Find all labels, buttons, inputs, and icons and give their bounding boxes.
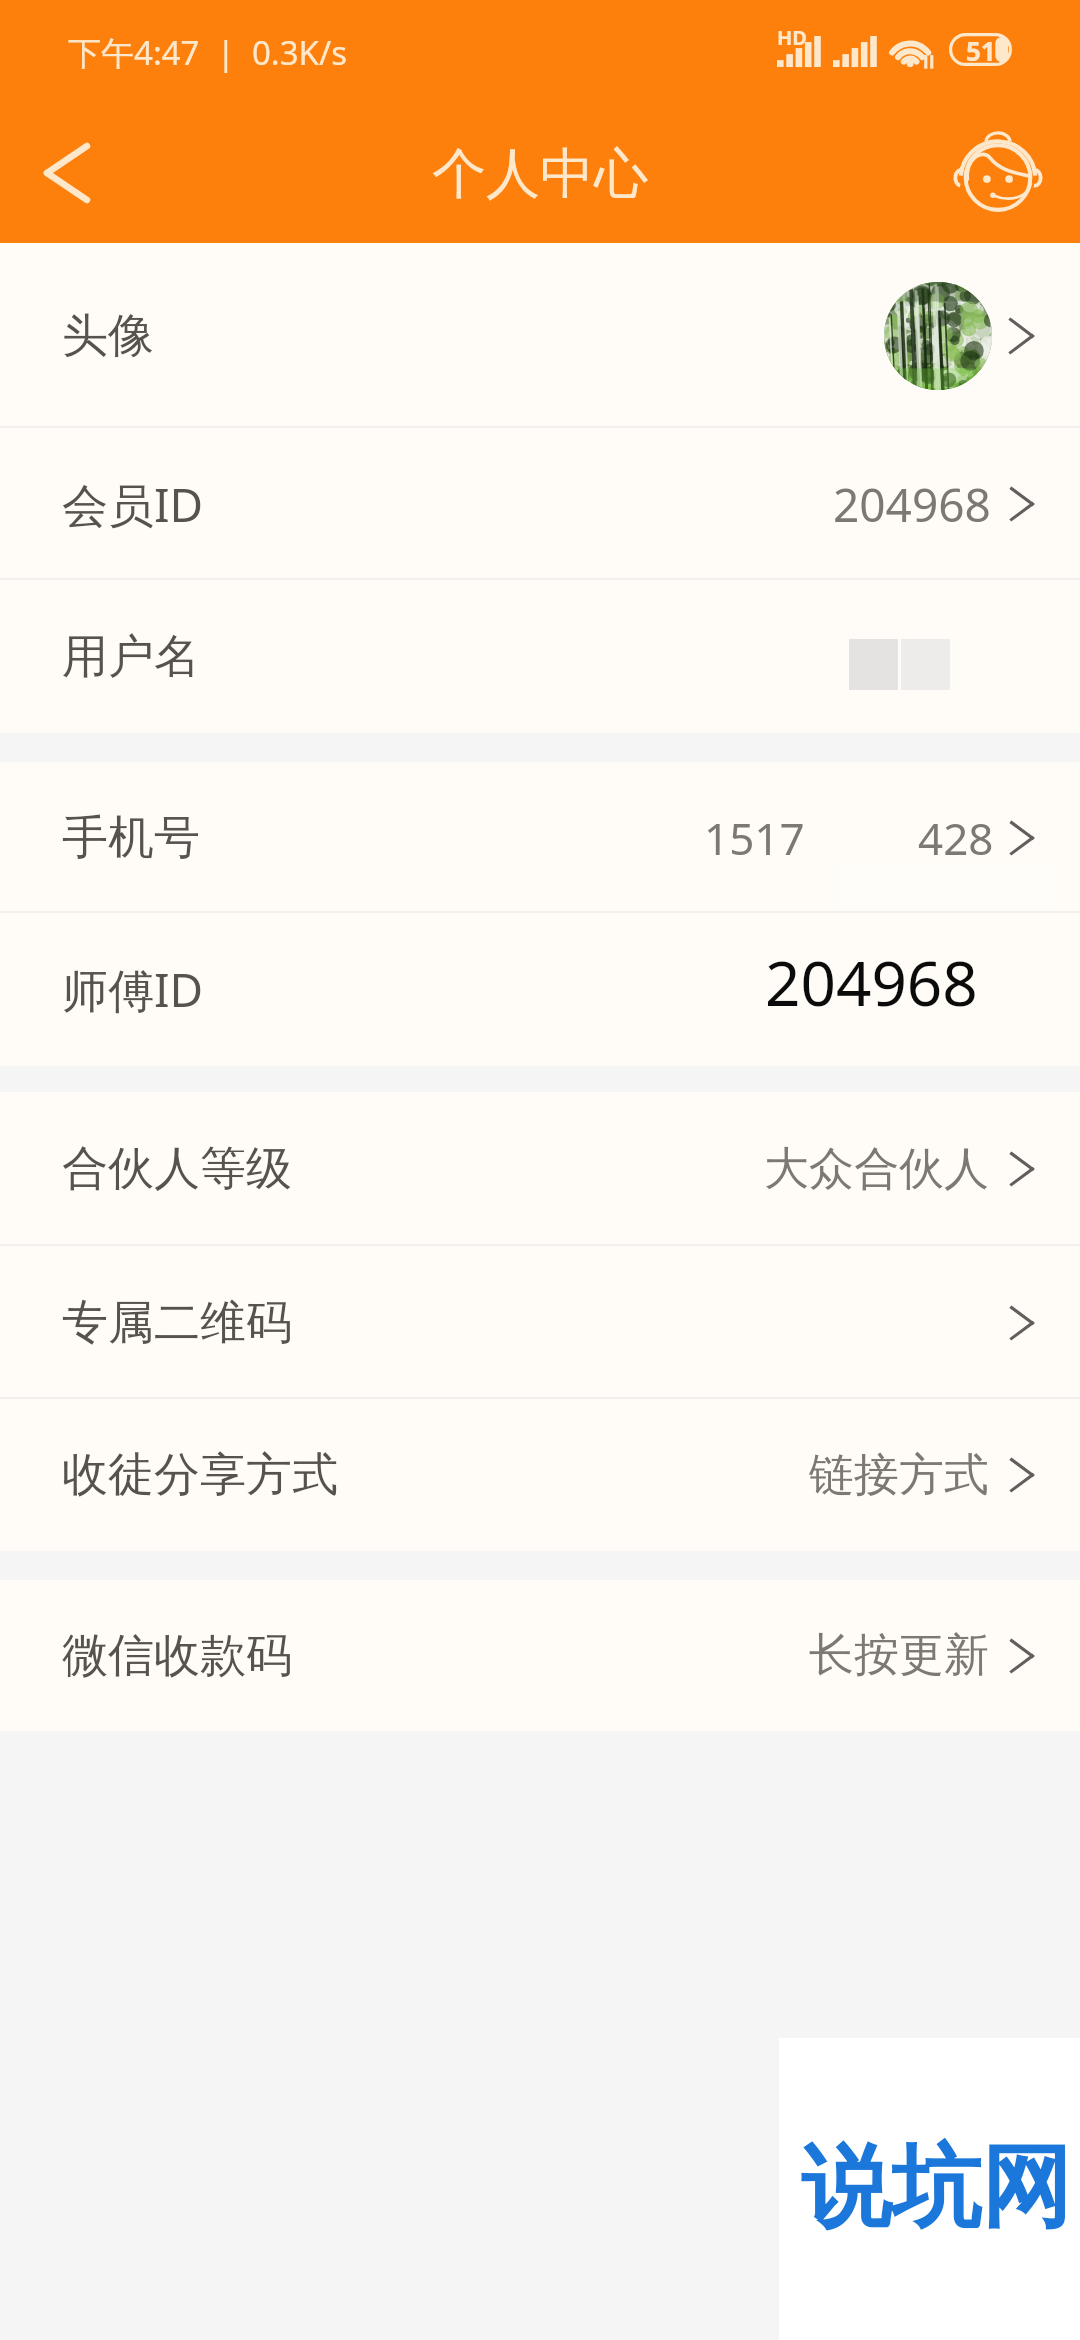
button[interactable]: 师傅ID [0, 913, 1080, 1066]
button[interactable]: 手机号 [0, 762, 1080, 913]
staticText: 下午4:47 | 0.3K/s [68, 30, 348, 75]
staticText: 链接方式 [809, 1447, 989, 1504]
staticText: 头像 [62, 307, 154, 365]
staticText: 合伙人等级 [62, 1140, 292, 1198]
button[interactable]: 合伙人等级 [0, 1092, 1080, 1246]
button[interactable]: Back [17, 127, 117, 219]
staticText: 用户名 [62, 628, 200, 686]
staticText: 说坑网 [801, 2131, 1071, 2244]
staticText: 个人中心 [432, 140, 648, 208]
staticText: 手机号 [62, 809, 200, 867]
staticText: 师傅ID [62, 958, 204, 1021]
staticText: 51 [966, 33, 996, 66]
staticText: 微信收款码 [62, 1627, 292, 1685]
button[interactable]: 用户名 [0, 580, 1080, 733]
staticText: 428 [918, 808, 994, 868]
button[interactable]: 头像 [0, 243, 1080, 428]
staticText: 大众合伙人 [764, 1141, 989, 1198]
button[interactable]: Customer service [936, 110, 1058, 232]
button[interactable]: 收徒分享方式 [0, 1399, 1080, 1551]
staticText: 会员ID [62, 473, 204, 536]
button[interactable]: 专属二维码 [0, 1246, 1080, 1399]
button[interactable]: 微信收款码 [0, 1580, 1080, 1731]
staticText: 204968 [833, 473, 991, 536]
staticText: 收徒分享方式 [62, 1446, 338, 1504]
staticText: 1517 [704, 808, 805, 868]
staticText: HD [777, 24, 807, 51]
button[interactable]: 会员ID [0, 428, 1080, 580]
staticText: 专属二维码 [62, 1294, 292, 1352]
staticText: 204968 [765, 940, 978, 1024]
staticText: 长按更新 [809, 1627, 989, 1684]
